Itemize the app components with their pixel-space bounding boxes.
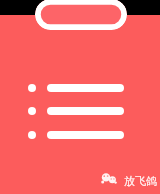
button[interactable] — [0, 127, 160, 143]
button[interactable] — [0, 80, 160, 96]
staticText: 放飞鸽 — [124, 174, 157, 188]
button[interactable] — [0, 103, 160, 119]
button[interactable]: Search — [35, 0, 127, 30]
other: WeChat watermark — [0, 0, 160, 194]
